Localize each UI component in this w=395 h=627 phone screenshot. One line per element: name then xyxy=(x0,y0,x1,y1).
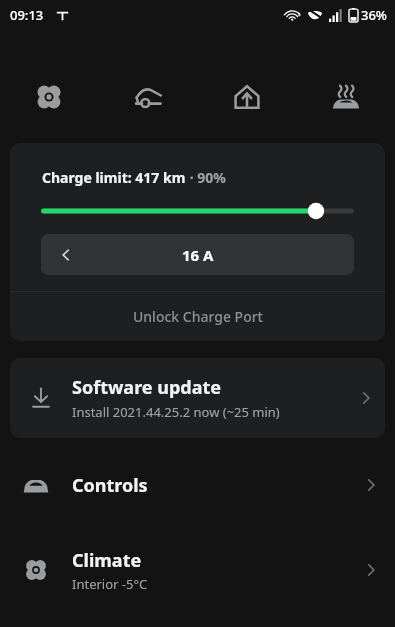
staticText: Unlock Charge Port xyxy=(133,307,263,326)
button[interactable]: Controls xyxy=(0,456,395,514)
button[interactable]: Software update xyxy=(10,358,385,438)
button[interactable]: Home xyxy=(197,74,296,120)
staticText: 09:13 xyxy=(10,6,44,24)
staticText: Climate xyxy=(72,548,142,573)
button[interactable]: Decrease xyxy=(53,242,79,268)
staticText: 36% xyxy=(361,6,387,24)
staticText: Interior -5°C xyxy=(72,575,148,593)
staticText: Install 2021.44.25.2 now (~25 min) xyxy=(72,403,280,421)
staticText: Software update xyxy=(72,375,222,400)
button[interactable]: 16 A xyxy=(41,234,354,275)
staticText: · 90% xyxy=(186,168,226,187)
button[interactable]: Unlock Charge Port xyxy=(10,292,385,341)
button[interactable]: Frunk xyxy=(98,74,197,120)
button[interactable]: Climate xyxy=(0,536,395,604)
button[interactable]: Fan xyxy=(0,74,98,120)
staticText: 16 A xyxy=(182,245,214,265)
button[interactable] xyxy=(32,200,363,222)
staticText: Controls xyxy=(72,473,148,498)
staticText: Charge limit: 417 km xyxy=(42,168,186,187)
button[interactable]: Defrost xyxy=(296,74,395,120)
